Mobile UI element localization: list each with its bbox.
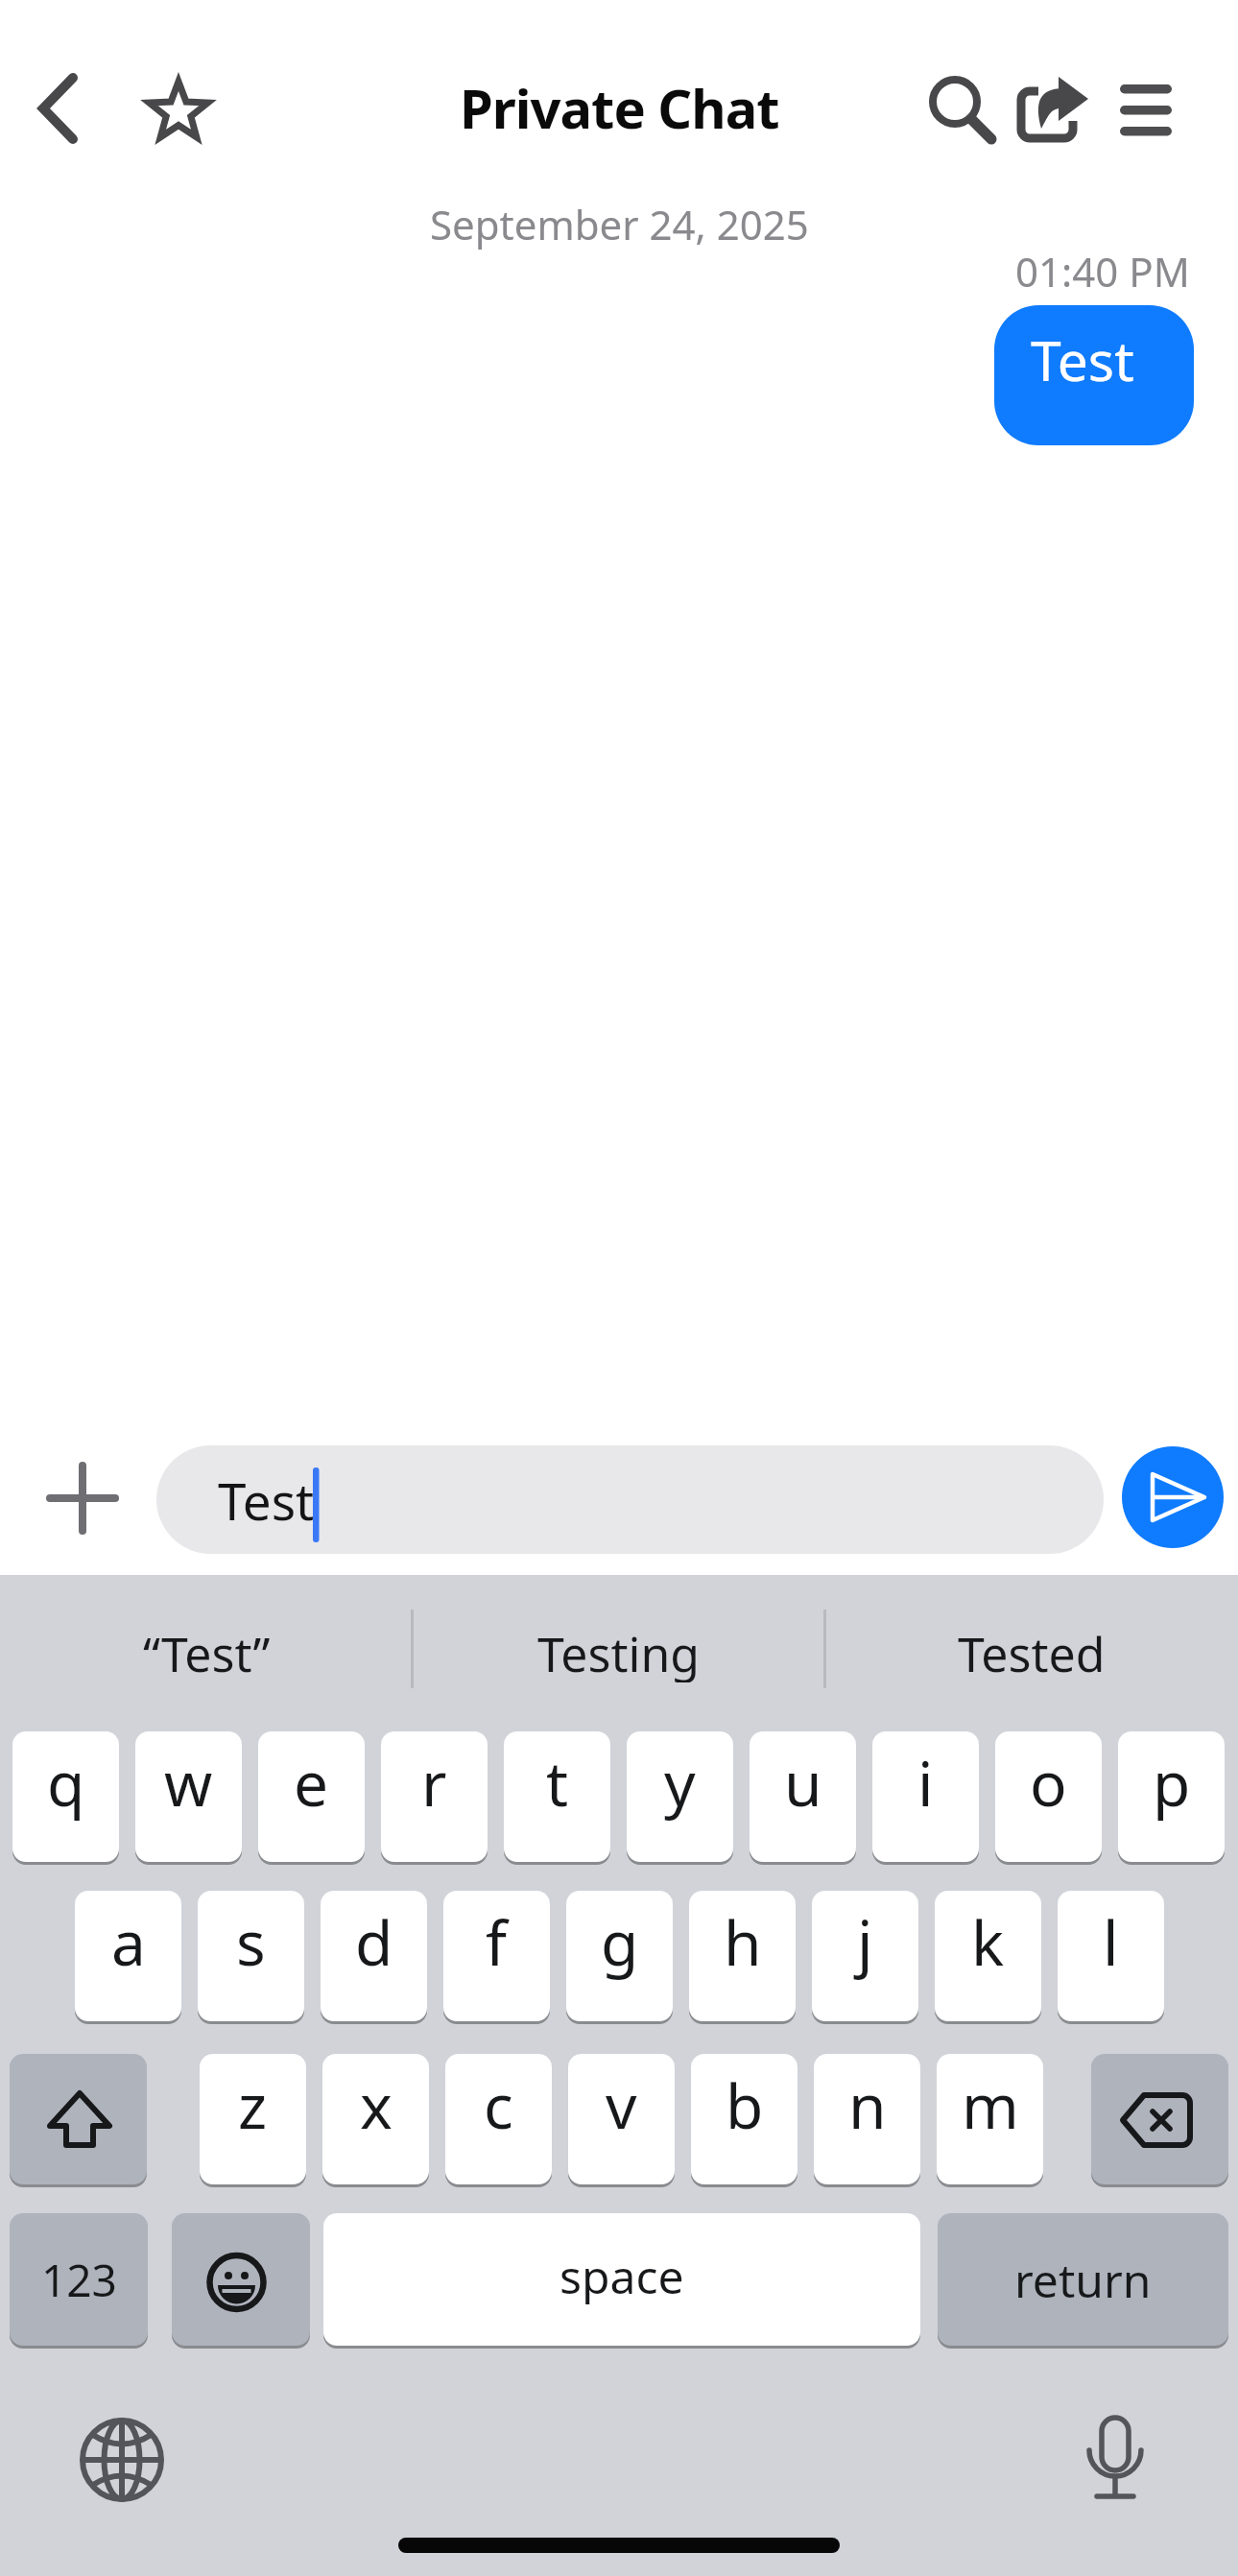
- staticText: y: [664, 1741, 696, 1825]
- staticText: Tested: [958, 1621, 1106, 1682]
- staticText: d: [355, 1900, 393, 1984]
- staticText: 123: [41, 2250, 117, 2310]
- staticText: z: [238, 2063, 268, 2147]
- staticText: 01:40 PM: [1015, 244, 1190, 298]
- staticText: a: [111, 1900, 146, 1984]
- staticText: Private Chat: [460, 71, 779, 144]
- staticText: q: [47, 1741, 85, 1825]
- staticText: Test: [218, 1466, 315, 1535]
- staticText: g: [601, 1900, 639, 1984]
- staticText: j: [857, 1900, 873, 1984]
- staticText: e: [294, 1741, 329, 1825]
- staticText: k: [971, 1900, 1005, 1984]
- staticText: o: [1030, 1741, 1067, 1825]
- staticText: return: [1014, 2249, 1152, 2311]
- staticText: t: [546, 1741, 569, 1825]
- staticText: h: [724, 1900, 762, 1984]
- staticText: l: [1103, 1900, 1119, 1984]
- staticText: s: [236, 1900, 266, 1984]
- staticText: u: [784, 1741, 822, 1825]
- staticText: w: [164, 1741, 213, 1825]
- staticText: “Test”: [143, 1621, 271, 1682]
- staticText: p: [1153, 1741, 1191, 1825]
- staticText: i: [917, 1741, 934, 1825]
- staticText: r: [421, 1741, 447, 1825]
- staticText: v: [606, 2063, 637, 2147]
- staticText: x: [360, 2063, 393, 2147]
- staticText: m: [962, 2063, 1019, 2147]
- staticText: f: [486, 1900, 508, 1984]
- staticText: space: [559, 2245, 684, 2307]
- staticText: Test: [1031, 322, 1134, 397]
- staticText: September 24, 2025: [430, 197, 809, 251]
- staticText: Testing: [537, 1621, 701, 1682]
- staticText: b: [726, 2063, 764, 2147]
- staticText: c: [484, 2063, 513, 2147]
- staticText: n: [848, 2063, 887, 2147]
